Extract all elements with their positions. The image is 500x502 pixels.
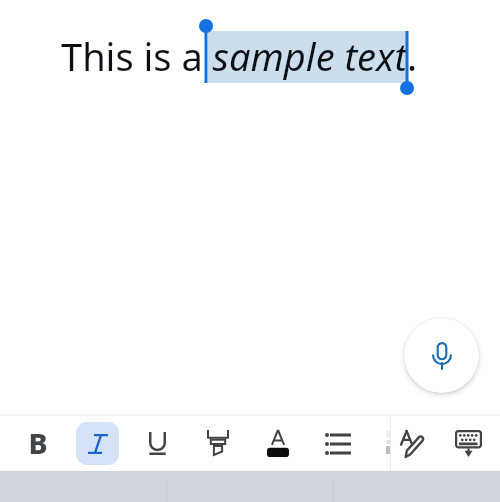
staticText: This is a sample text. xyxy=(61,30,418,82)
button[interactable]: Bulleted list xyxy=(316,422,359,465)
button[interactable]: Highlight xyxy=(196,422,239,465)
button[interactable]: Underline xyxy=(136,422,179,465)
button[interactable]: Hide keyboard xyxy=(447,422,490,465)
button[interactable]: Italic xyxy=(76,422,119,465)
button[interactable]: Handwriting xyxy=(391,422,434,465)
button[interactable]: Bold xyxy=(16,422,59,465)
button[interactable]: Voice input xyxy=(404,318,479,393)
button[interactable]: Text colour xyxy=(256,422,299,465)
staticText: B xyxy=(28,424,48,463)
